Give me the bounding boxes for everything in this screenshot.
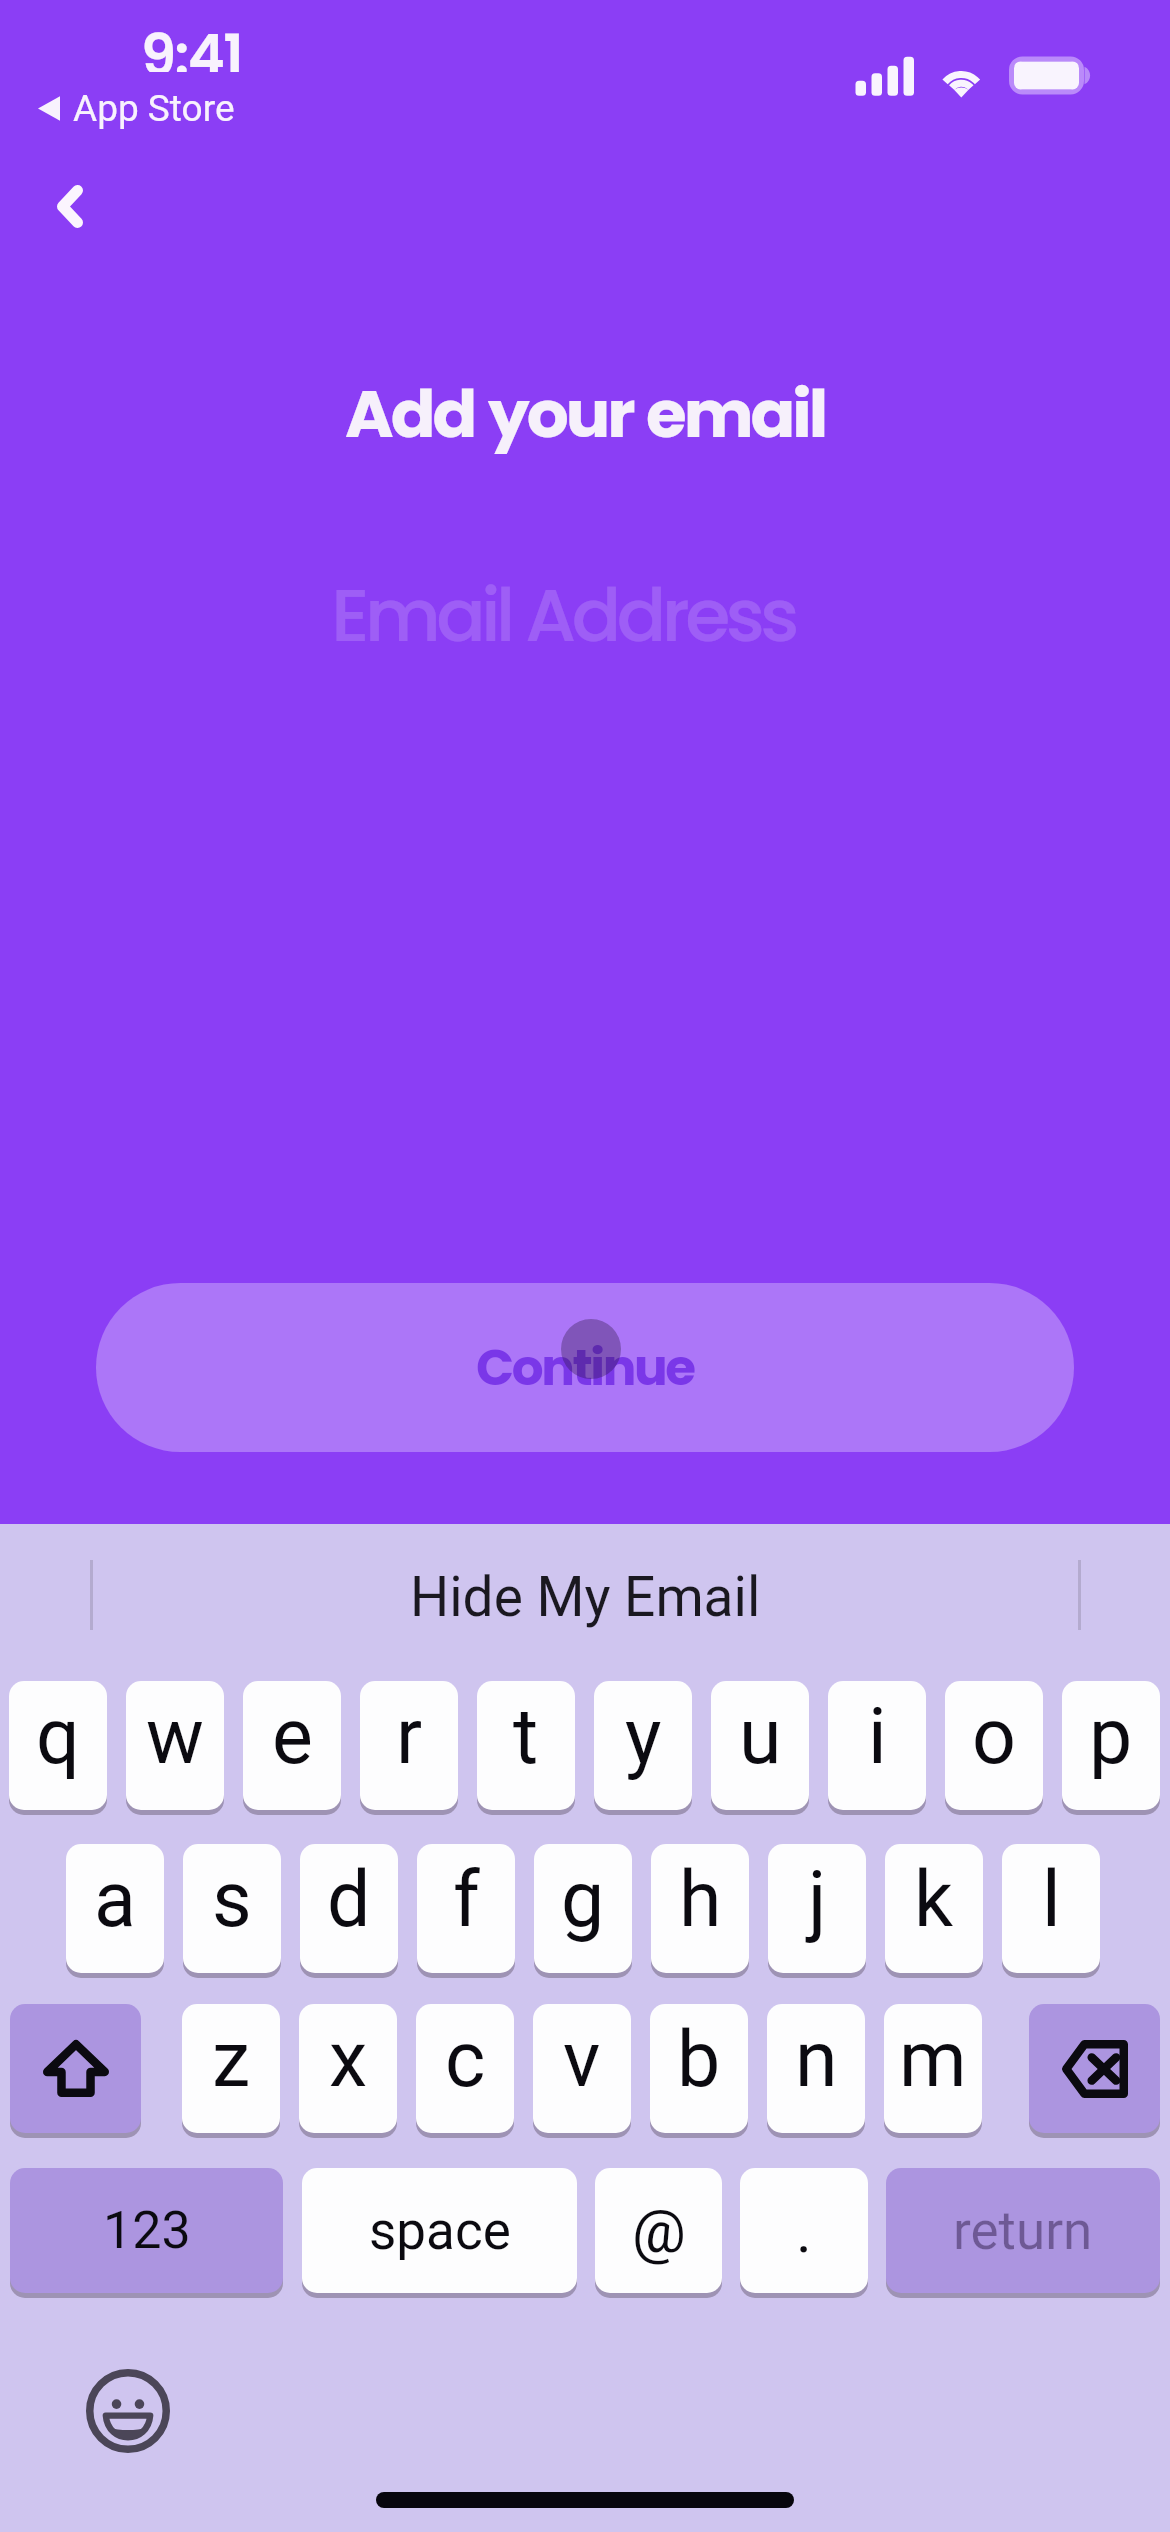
button[interactable]: Continue <box>96 1283 1074 1452</box>
staticText: i <box>868 1692 887 1782</box>
button[interactable]: Shift <box>10 2004 141 2133</box>
staticText: d <box>327 1855 371 1945</box>
button[interactable]: Backspace <box>1029 2004 1160 2133</box>
staticText: 9:41 <box>141 16 243 72</box>
button[interactable]: h <box>651 1844 749 1973</box>
staticText: y <box>625 1692 662 1782</box>
staticText: b <box>677 2015 721 2105</box>
button[interactable]: y <box>594 1681 692 1810</box>
button[interactable]: s <box>183 1844 281 1973</box>
staticText: t <box>513 1692 539 1782</box>
staticText: App Store <box>73 87 235 130</box>
button[interactable]: q <box>9 1681 107 1810</box>
button[interactable]: z <box>182 2004 280 2133</box>
staticText: a <box>94 1855 136 1945</box>
button[interactable]: p <box>1062 1681 1160 1810</box>
button[interactable]: m <box>884 2004 982 2133</box>
staticText: j <box>808 1855 827 1945</box>
button[interactable]: r <box>360 1681 458 1810</box>
button[interactable]: 123 <box>10 2168 283 2293</box>
staticText: Continue <box>476 1333 694 1403</box>
staticText: email <box>646 368 826 460</box>
button[interactable]: t <box>477 1681 575 1810</box>
staticText: w <box>146 1692 204 1782</box>
staticText: g <box>561 1855 605 1945</box>
staticText: l <box>1042 1855 1061 1945</box>
staticText: . <box>796 2196 812 2266</box>
button[interactable]: w <box>126 1681 224 1810</box>
button[interactable]: e <box>243 1681 341 1810</box>
staticText: f <box>453 1855 480 1945</box>
staticText: h <box>679 1855 722 1945</box>
staticText: u <box>739 1692 782 1782</box>
staticText: x <box>329 2015 368 2105</box>
staticText: r <box>396 1692 423 1782</box>
staticText: q <box>36 1692 80 1782</box>
staticText: Hide My Email <box>410 1565 761 1629</box>
button[interactable]: x <box>299 2004 397 2133</box>
staticText: v <box>563 2015 601 2105</box>
button[interactable]: a <box>66 1844 164 1973</box>
button[interactable]: Hide My Email <box>0 1524 1170 1656</box>
button[interactable]: space <box>302 2168 577 2293</box>
staticText: your <box>488 368 633 460</box>
button[interactable]: Emoji keyboard <box>68 2351 188 2471</box>
staticText: p <box>1089 1692 1133 1782</box>
button[interactable]: d <box>300 1844 398 1973</box>
button[interactable]: l <box>1002 1844 1100 1973</box>
button[interactable]: j <box>768 1844 866 1973</box>
button[interactable]: n <box>767 2004 865 2133</box>
staticText: @ <box>632 2196 686 2266</box>
staticText: z <box>212 2015 251 2105</box>
staticText: Email Address <box>331 564 795 666</box>
button[interactable]: return <box>886 2168 1160 2293</box>
button[interactable]: i <box>828 1681 926 1810</box>
button[interactable]: c <box>416 2004 514 2133</box>
staticText: 123 <box>103 2200 191 2261</box>
button[interactable]: . <box>740 2168 868 2293</box>
staticText: return <box>953 2200 1093 2262</box>
staticText: m <box>899 2015 967 2105</box>
button[interactable]: b <box>650 2004 748 2133</box>
staticText: e <box>272 1692 313 1782</box>
button[interactable]: u <box>711 1681 809 1810</box>
button[interactable]: f <box>417 1844 515 1973</box>
button[interactable]: o <box>945 1681 1043 1810</box>
button[interactable]: v <box>533 2004 631 2133</box>
button[interactable]: g <box>534 1844 632 1973</box>
staticText: Add <box>345 368 475 460</box>
button[interactable]: Back <box>10 150 130 263</box>
staticText: c <box>445 2015 486 2105</box>
button[interactable]: @ <box>595 2168 722 2293</box>
staticText: n <box>795 2015 838 2105</box>
staticText: o <box>972 1692 1016 1782</box>
staticText: space <box>369 2200 511 2262</box>
button[interactable]: k <box>885 1844 983 1973</box>
staticText: s <box>212 1855 252 1945</box>
staticText: k <box>914 1855 954 1945</box>
